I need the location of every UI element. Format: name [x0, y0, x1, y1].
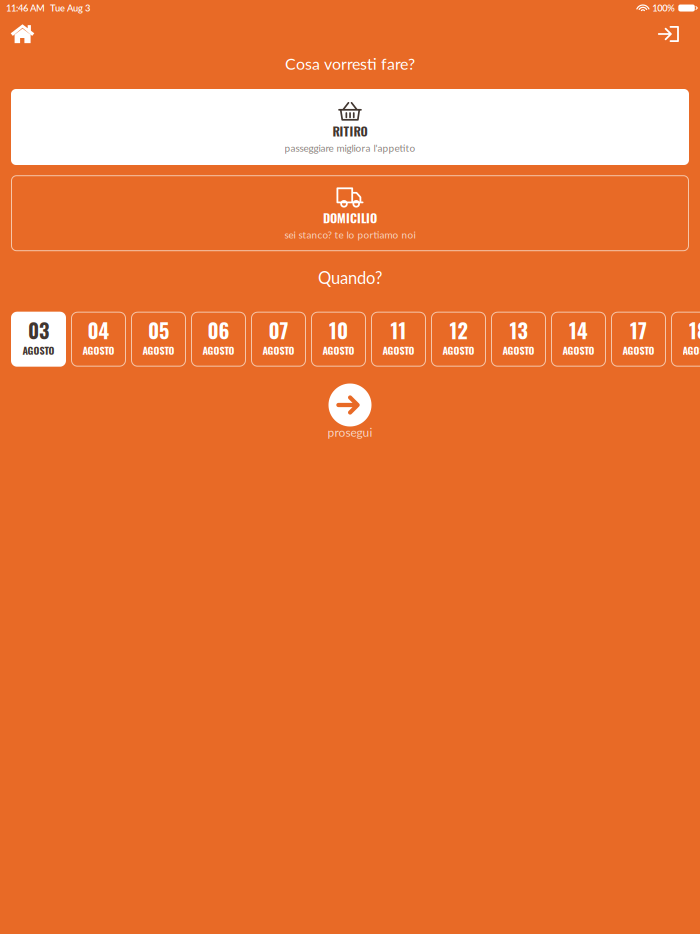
staticText: AGOSTO: [262, 343, 294, 358]
button[interactable]: Accedi: [650, 18, 687, 50]
staticText: AGOSTO: [682, 343, 700, 358]
button[interactable]: prosegui: [327, 383, 372, 437]
button[interactable]: 10: [311, 312, 366, 367]
staticText: 100%: [652, 2, 675, 14]
staticText: 18: [689, 315, 700, 345]
button[interactable]: 05: [131, 312, 186, 367]
staticText: 04: [87, 315, 109, 345]
staticText: AGOSTO: [322, 343, 354, 358]
button[interactable]: 04: [71, 312, 126, 367]
staticText: sei stanco? te lo portiamo noi: [284, 229, 415, 241]
staticText: 12: [449, 315, 467, 345]
staticText: 17: [630, 315, 647, 345]
button[interactable]: 13: [491, 312, 546, 367]
staticText: 11:46 AM: [6, 2, 45, 14]
button[interactable]: 18: [671, 312, 700, 367]
staticText: 03: [28, 315, 49, 345]
staticText: passeggiare migliora l'appetito: [284, 142, 415, 154]
button[interactable]: DOMICILIO: [11, 175, 689, 251]
staticText: DOMICILIO: [323, 208, 377, 227]
staticText: AGOSTO: [502, 343, 534, 358]
staticText: 10: [329, 315, 348, 345]
staticText: RITIRO: [332, 122, 367, 140]
staticText: AGOSTO: [22, 343, 54, 358]
staticText: Tue Aug 3: [50, 2, 90, 14]
staticText: prosegui: [327, 425, 372, 439]
staticText: Quando?: [318, 268, 382, 287]
button[interactable]: 06: [191, 312, 246, 367]
button[interactable]: 11: [371, 312, 426, 367]
staticText: AGOSTO: [82, 343, 114, 358]
staticText: AGOSTO: [622, 343, 654, 358]
button[interactable]: 07: [251, 312, 306, 367]
button[interactable]: Home: [3, 16, 42, 51]
staticText: AGOSTO: [202, 343, 234, 358]
staticText: 06: [207, 315, 229, 345]
button[interactable]: 14: [551, 312, 606, 367]
staticText: 13: [509, 315, 527, 345]
staticText: 11: [390, 315, 406, 345]
staticText: AGOSTO: [562, 343, 594, 358]
staticText: 14: [569, 315, 588, 345]
staticText: Cosa vorresti fare?: [285, 54, 415, 73]
button[interactable]: RITIRO: [11, 89, 689, 165]
staticText: AGOSTO: [142, 343, 174, 358]
staticText: AGOSTO: [442, 343, 474, 358]
staticText: 05: [148, 315, 169, 345]
button[interactable]: 12: [431, 312, 486, 367]
button[interactable]: 03: [11, 312, 66, 367]
staticText: 07: [268, 315, 288, 345]
button[interactable]: 17: [611, 312, 666, 367]
staticText: AGOSTO: [382, 343, 414, 358]
